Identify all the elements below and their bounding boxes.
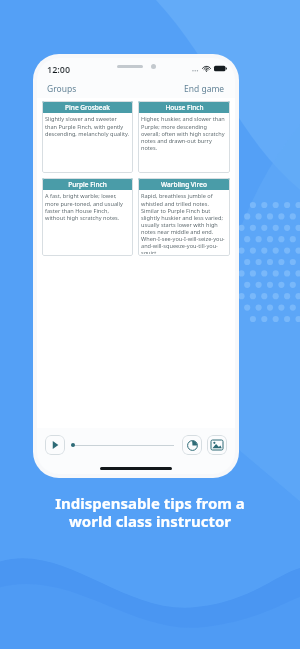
button[interactable]: Pine Grosbeak [42,101,133,173]
button[interactable]: Playback speed [182,435,202,455]
button[interactable]: Play [45,435,65,455]
button[interactable]: Purple Finch [42,178,133,256]
button[interactable]: Groups [45,81,79,97]
staticText: Higher, huskier, and slower than Purple;… [141,115,227,151]
staticText: End game [184,83,225,95]
button[interactable]: Warbling Vireo [138,178,230,256]
staticText: Indispensable tips from a world class in… [55,493,245,532]
button[interactable]: House Finch [138,101,230,173]
staticText: A fast, bright warble; lower, more pure-… [45,192,130,221]
staticText: Groups [47,83,77,95]
staticText: Rapid, breathless jumble of whistled and… [141,192,227,254]
staticText: Warbling Vireo [161,180,207,189]
button[interactable]: Show image [207,435,227,455]
staticText: Slightly slower and sweeter than Purple … [45,115,130,137]
button[interactable]: Seek [71,437,174,453]
staticText: 12:00 [47,63,71,75]
staticText: Pine Grosbeak [65,103,110,112]
staticText: House Finch [165,103,204,112]
button[interactable]: End game [182,81,227,97]
staticText: Purple Finch [68,180,107,189]
